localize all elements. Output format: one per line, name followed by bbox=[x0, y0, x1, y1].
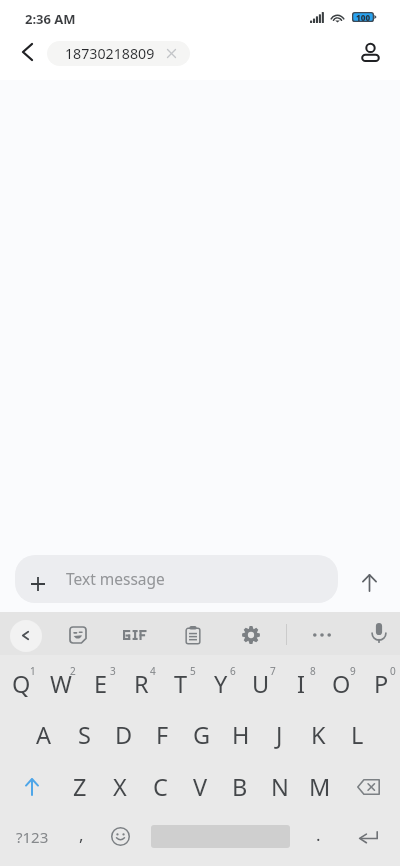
button[interactable]: Contact details bbox=[346, 28, 394, 76]
staticText: 1 bbox=[30, 664, 36, 678]
button[interactable]: , bbox=[64, 813, 100, 866]
button[interactable]: N bbox=[260, 760, 300, 813]
button[interactable]: W bbox=[40, 655, 80, 707]
staticText: Text message bbox=[66, 568, 165, 589]
staticText: 2 bbox=[70, 664, 76, 678]
button[interactable]: K bbox=[299, 707, 338, 760]
button[interactable]: Text message bbox=[15, 555, 338, 603]
button[interactable]: T bbox=[160, 655, 200, 707]
staticText: J bbox=[276, 719, 283, 751]
button[interactable]: Shift bbox=[0, 760, 60, 813]
staticText: V bbox=[193, 771, 208, 803]
staticText: Y bbox=[214, 668, 228, 700]
staticText: Q bbox=[12, 668, 31, 700]
staticText: W bbox=[50, 668, 72, 700]
staticText: 5 bbox=[190, 664, 196, 678]
staticText: R bbox=[134, 668, 149, 700]
staticText: S bbox=[78, 719, 91, 751]
staticText: P bbox=[374, 668, 389, 700]
staticText: 8 bbox=[310, 664, 316, 678]
staticText: E bbox=[94, 668, 108, 700]
staticText: A bbox=[36, 719, 52, 751]
staticText: 100 bbox=[356, 12, 371, 23]
staticText: O bbox=[332, 668, 351, 700]
staticText: 9 bbox=[350, 664, 356, 678]
staticText: F bbox=[156, 719, 169, 751]
button[interactable]: U bbox=[240, 655, 280, 707]
button[interactable]: Q bbox=[0, 655, 40, 707]
staticText: 4 bbox=[150, 664, 156, 678]
button[interactable]: Settings bbox=[234, 618, 268, 652]
button[interactable]: More options bbox=[305, 618, 339, 652]
staticText: ?123 bbox=[16, 827, 49, 847]
staticText: . bbox=[316, 823, 321, 846]
staticText: B bbox=[232, 771, 248, 803]
staticText: X bbox=[113, 771, 127, 803]
button[interactable]: GIF bbox=[118, 618, 152, 652]
button[interactable]: Stickers bbox=[61, 618, 95, 652]
button[interactable]: Emoji bbox=[100, 813, 141, 866]
staticText: 0 bbox=[390, 664, 396, 678]
button[interactable]: D bbox=[104, 707, 143, 760]
button[interactable]: R bbox=[120, 655, 160, 707]
button[interactable]: Back bbox=[3, 28, 51, 76]
button[interactable]: P bbox=[360, 655, 400, 707]
button[interactable]: A bbox=[24, 707, 64, 760]
staticText: , bbox=[79, 823, 84, 846]
button[interactable]: Voice input bbox=[362, 616, 396, 650]
staticText: N bbox=[271, 771, 289, 803]
button[interactable]: J bbox=[260, 707, 299, 760]
button[interactable]: E bbox=[80, 655, 120, 707]
staticText: M bbox=[309, 771, 331, 803]
button[interactable]: ?123 bbox=[0, 813, 64, 866]
staticText: D bbox=[115, 719, 133, 751]
staticText: H bbox=[232, 719, 250, 751]
button[interactable]: Z bbox=[60, 760, 100, 813]
button[interactable]: Clipboard bbox=[176, 618, 210, 652]
staticText: 18730218809 bbox=[65, 44, 155, 63]
button[interactable]: Hide toolbar bbox=[10, 620, 42, 652]
staticText: L bbox=[351, 719, 364, 751]
button[interactable]: Send bbox=[345, 559, 393, 607]
button[interactable]: C bbox=[140, 760, 180, 813]
button[interactable]: Y bbox=[200, 655, 240, 707]
button[interactable]: G bbox=[182, 707, 221, 760]
button[interactable]: . bbox=[300, 813, 336, 866]
button[interactable]: F bbox=[143, 707, 182, 760]
button[interactable]: V bbox=[180, 760, 220, 813]
button[interactable]: O bbox=[320, 655, 360, 707]
button[interactable]: H bbox=[221, 707, 260, 760]
button[interactable]: Backspace bbox=[340, 760, 400, 813]
button[interactable]: L bbox=[338, 707, 377, 760]
staticText: Z bbox=[73, 771, 87, 803]
staticText: 2:36 AM bbox=[25, 10, 76, 28]
button[interactable]: X bbox=[100, 760, 140, 813]
button[interactable]: M bbox=[300, 760, 340, 813]
staticText: U bbox=[252, 668, 270, 700]
staticText: K bbox=[311, 719, 326, 751]
staticText: G bbox=[193, 719, 211, 751]
button[interactable]: S bbox=[64, 707, 104, 760]
button[interactable]: I bbox=[280, 655, 320, 707]
button[interactable]: Enter bbox=[336, 813, 400, 866]
staticText: I bbox=[297, 668, 305, 700]
button[interactable]: 18730218809 bbox=[47, 41, 190, 66]
staticText: C bbox=[153, 771, 168, 803]
staticText: 6 bbox=[230, 664, 236, 678]
button[interactable]: B bbox=[220, 760, 260, 813]
staticText: T bbox=[174, 668, 188, 700]
staticText: 3 bbox=[110, 664, 116, 678]
staticText: 7 bbox=[270, 664, 276, 678]
